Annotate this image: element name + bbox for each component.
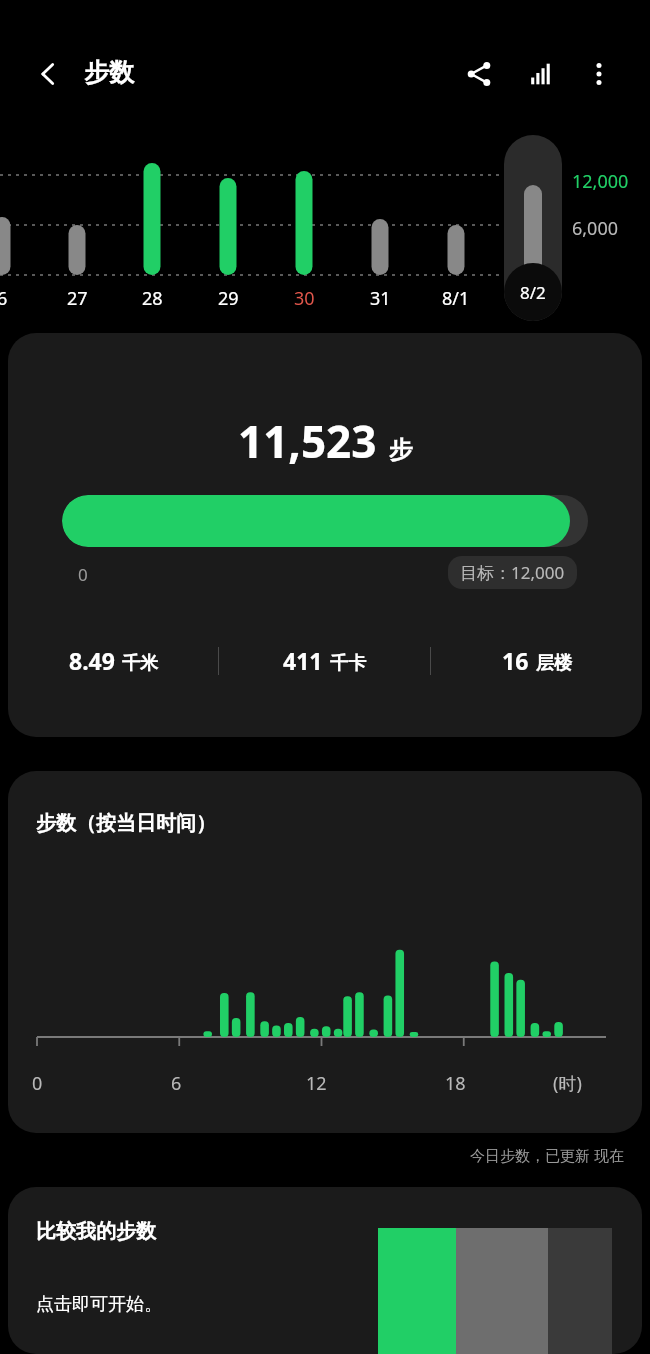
button[interactable]: 步数（按当日时间） [8, 771, 642, 1133]
staticText: 步 [389, 435, 413, 465]
button[interactable]: 11,523 [8, 333, 642, 737]
staticText: 比较我的步数 [36, 1219, 156, 1244]
staticText: 8/1 [442, 286, 470, 311]
staticText: 16 [502, 645, 529, 676]
button[interactable]: 目标：12,000 [448, 556, 577, 589]
button[interactable]: 8/2 [504, 135, 562, 321]
staticText: 30 [294, 286, 315, 311]
staticText: 点击即可开始。 [36, 1293, 162, 1316]
staticText: 6,000 [572, 216, 619, 241]
staticText: 0 [32, 1071, 43, 1096]
staticText: 层楼 [536, 652, 572, 675]
staticText: 步数（按当日时间） [36, 811, 216, 836]
button[interactable]: 8.49 [8, 645, 218, 676]
staticText: 29 [218, 286, 239, 311]
staticText: 11,523 [238, 411, 377, 471]
staticText: (时) [553, 1071, 582, 1096]
staticText: 12,000 [572, 169, 629, 194]
staticText: 8/2 [520, 281, 546, 304]
button[interactable]: More options [572, 47, 626, 101]
staticText: 今日步数，已更新 现在 [470, 1145, 624, 1165]
staticText: 6 [0, 286, 8, 311]
button[interactable]: 411 [219, 645, 430, 676]
button[interactable]: Trends [514, 47, 568, 101]
button[interactable]: 8/1 [426, 286, 486, 311]
button[interactable]: 28 [122, 286, 182, 311]
button[interactable]: 30 [274, 286, 334, 311]
staticText: 31 [370, 286, 391, 311]
staticText: 411 [283, 645, 323, 676]
staticText: 6 [171, 1071, 182, 1096]
staticText: 0 [78, 563, 88, 586]
button[interactable]: 27 [47, 286, 107, 311]
button[interactable]: Share [452, 47, 506, 101]
button[interactable]: 6 [0, 286, 32, 311]
button[interactable]: 31 [350, 286, 410, 311]
button[interactable]: 16 [431, 645, 642, 676]
staticText: 目标：12,000 [460, 561, 565, 584]
button[interactable]: 29 [198, 286, 258, 311]
staticText: 千卡 [330, 652, 366, 675]
staticText: 千米 [122, 652, 158, 675]
button[interactable]: Back [20, 46, 76, 102]
staticText: 27 [67, 286, 88, 311]
staticText: 18 [445, 1071, 466, 1096]
staticText: 步数 [84, 57, 134, 88]
staticText: 28 [142, 286, 163, 311]
staticText: 12 [306, 1071, 327, 1096]
button[interactable]: 比较我的步数 [8, 1187, 642, 1354]
staticText: 8.49 [69, 645, 115, 676]
